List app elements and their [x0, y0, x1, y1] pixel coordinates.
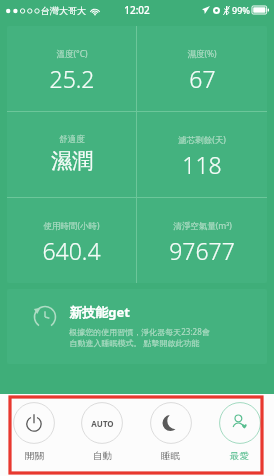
button[interactable]: 開關	[0, 402, 68, 476]
button[interactable]: 濕度(%)	[137, 26, 267, 111]
staticText: 25.2	[49, 63, 95, 94]
staticText: 使用時間(小時)	[43, 220, 100, 232]
staticText: 舒適度	[59, 134, 85, 145]
button[interactable]: 濾芯剩餘(天)	[137, 112, 267, 197]
staticText: 開關	[25, 450, 44, 462]
button[interactable]: 舒適度	[7, 112, 136, 197]
staticText: 睡眠	[161, 450, 180, 462]
staticText: AUTO	[91, 418, 114, 429]
staticText: 根據您的使用習慣，淨化器每天23:28會	[69, 326, 210, 337]
staticText: 最愛	[230, 450, 249, 462]
staticText: 溫度(°C)	[56, 48, 88, 60]
staticText: 640.4	[42, 235, 101, 266]
button[interactable]: 新技能get	[7, 289, 267, 364]
staticText: 新技能get	[69, 303, 130, 321]
staticText: 67	[189, 63, 216, 94]
button[interactable]: 自動	[68, 402, 136, 476]
button[interactable]: 溫度(°C)	[7, 26, 136, 111]
staticText: 12:02	[124, 3, 150, 17]
button[interactable]: 睡眠	[136, 402, 205, 476]
staticText: 濕度(%)	[187, 48, 217, 60]
staticText: 台灣大哥大	[41, 5, 86, 16]
staticText: 118	[182, 149, 222, 180]
button[interactable]: 清淨空氣量(m³)	[137, 198, 267, 283]
staticText: 99%	[232, 4, 250, 16]
button[interactable]: 使用時間(小時)	[7, 198, 136, 283]
staticText: 自動	[93, 450, 112, 462]
staticText: 濾芯剩餘(天)	[178, 134, 226, 146]
staticText: 濕潤	[51, 148, 93, 174]
staticText: 清淨空氣量(m³)	[173, 220, 232, 232]
button[interactable]: 最愛	[205, 402, 274, 476]
staticText: 97677	[169, 235, 235, 266]
staticText: 自動進入睡眠模式。 點擊開啟此功能	[69, 337, 200, 348]
